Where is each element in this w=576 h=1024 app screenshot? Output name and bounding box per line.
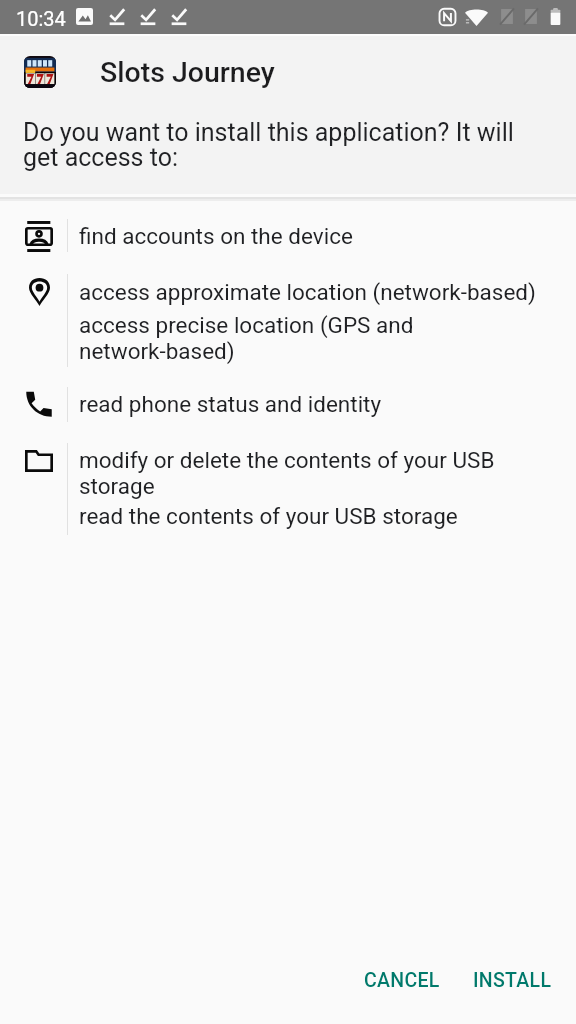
other: Location permission <box>29 278 50 306</box>
staticText: CANCEL <box>364 969 440 992</box>
staticText: Slots Journey <box>100 56 275 89</box>
staticText: read the contents of your USB storage <box>79 503 458 529</box>
button[interactable]: INSTALL <box>457 960 568 1001</box>
staticText: access approximate location (network-bas… <box>79 279 536 305</box>
staticText: INSTALL <box>473 969 552 992</box>
staticText: read phone status and identity <box>79 391 382 417</box>
staticText: access precise location (GPS and <box>79 312 414 338</box>
other: Accounts permission <box>25 221 53 252</box>
other: Storage permission <box>25 450 53 472</box>
other: Phone permission <box>26 391 52 417</box>
staticText: 10:34 <box>16 7 66 30</box>
button[interactable]: CANCEL <box>348 960 456 1001</box>
staticText: find accounts on the device <box>79 223 353 249</box>
staticText: network-based) <box>79 338 235 364</box>
staticText: storage <box>79 473 155 499</box>
staticText: modify or delete the contents of your US… <box>79 447 495 473</box>
staticText: Do you want to install this application?… <box>23 118 514 172</box>
